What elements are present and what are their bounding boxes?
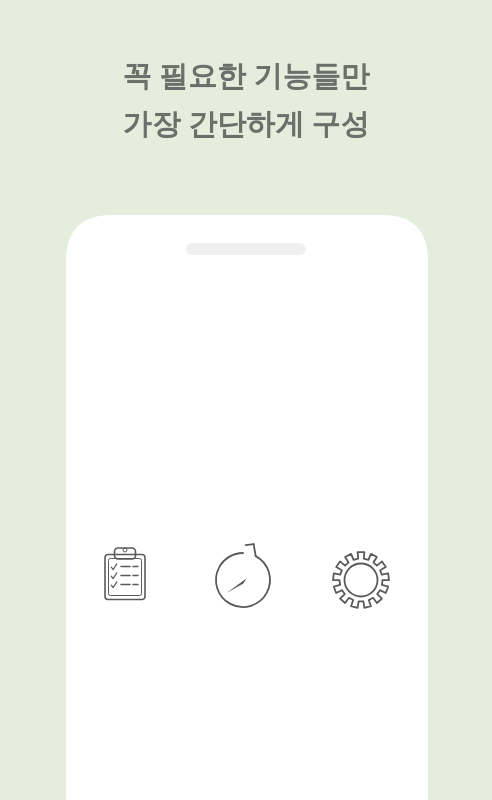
button[interactable]: 설정 — [331, 550, 391, 610]
button[interactable]: 타이머 — [213, 550, 273, 610]
staticText: 가장 간단하게 구성 — [122, 103, 370, 143]
button[interactable]: 체크리스트 — [95, 547, 155, 607]
staticText: 꼭 필요한 기능들만 — [122, 55, 370, 95]
